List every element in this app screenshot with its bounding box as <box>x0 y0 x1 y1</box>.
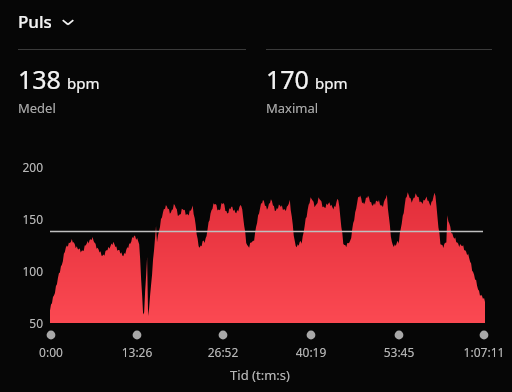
staticText: 1:07:11 <box>444 344 512 360</box>
staticText: 50 <box>0 315 43 331</box>
staticText: 150 <box>0 211 43 227</box>
staticText: 26:52 <box>183 344 263 360</box>
staticText: 53:45 <box>359 344 439 360</box>
staticText: 0:00 <box>11 344 91 360</box>
staticText: bpm <box>315 73 348 93</box>
button[interactable]: 138 <box>18 49 246 117</box>
staticText: 13:26 <box>97 344 177 360</box>
staticText: Medel <box>18 99 56 117</box>
staticText: 170 <box>266 62 309 96</box>
staticText: Tid (t:m:s) <box>160 366 360 384</box>
other: Expand metric selector <box>61 15 75 29</box>
staticText: 200 <box>0 159 43 175</box>
staticText: Maximal <box>266 99 319 117</box>
staticText: Puls <box>18 10 52 33</box>
button[interactable]: 170 <box>266 49 492 117</box>
staticText: 100 <box>0 263 43 279</box>
staticText: 138 <box>18 62 61 96</box>
button[interactable]: Puls <box>18 8 83 35</box>
staticText: bpm <box>67 73 100 93</box>
staticText: 40:19 <box>271 344 351 360</box>
